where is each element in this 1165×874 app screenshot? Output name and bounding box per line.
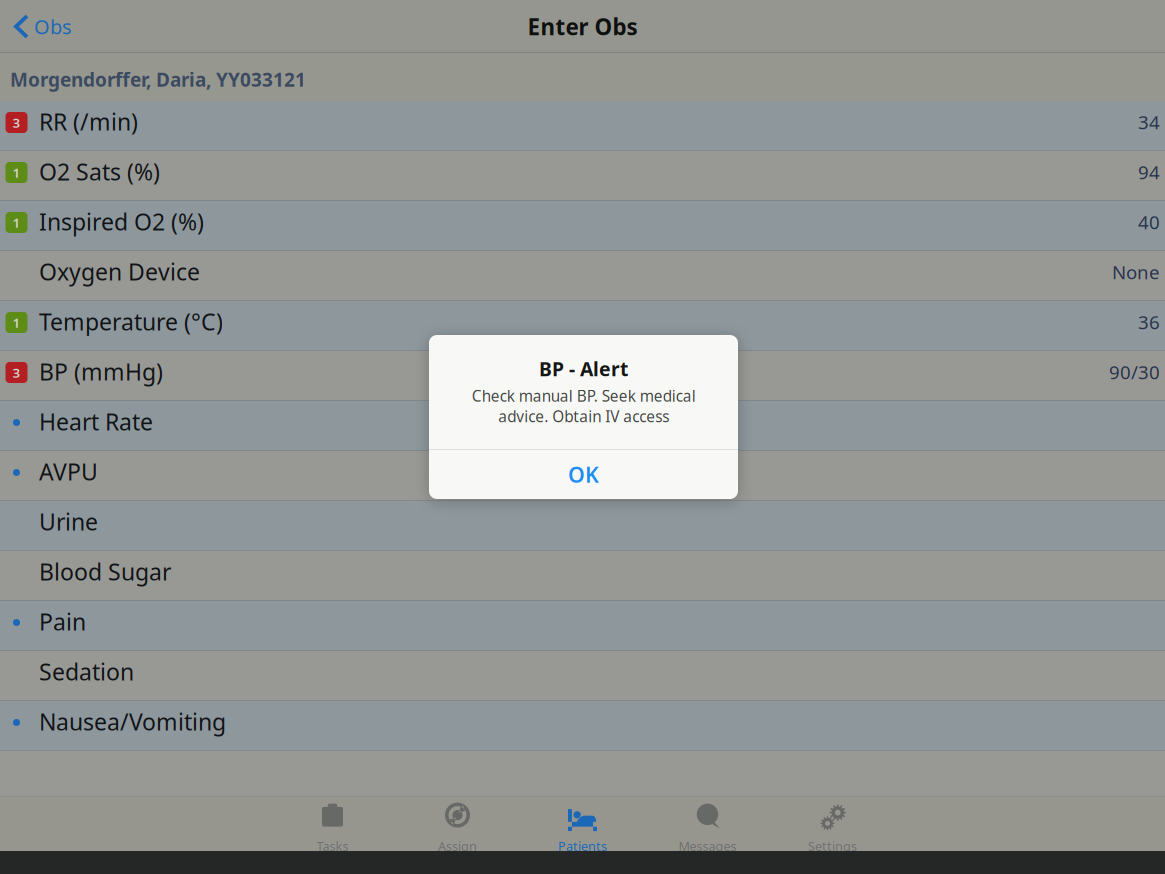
staticText: Temperature (°C) bbox=[39, 306, 223, 337]
staticText: Patients bbox=[558, 838, 607, 854]
staticText: AVPU bbox=[39, 456, 98, 487]
staticText: 1 bbox=[12, 164, 20, 181]
staticText: 94 bbox=[1138, 160, 1160, 184]
staticText: None bbox=[1112, 260, 1160, 284]
staticText: Obs bbox=[34, 13, 72, 40]
staticText: RR (/min) bbox=[39, 106, 138, 137]
staticText: Morgendorffer, Daria, YY033121 bbox=[10, 67, 306, 92]
button[interactable]: Urine bbox=[0, 501, 1165, 551]
button[interactable]: Oxygen Device bbox=[0, 251, 1165, 301]
staticText: 1 bbox=[12, 214, 20, 231]
staticText: 36 bbox=[1138, 310, 1160, 334]
button[interactable]: Nausea/Vomiting bbox=[0, 701, 1165, 751]
staticText: BP (mmHg) bbox=[39, 356, 163, 387]
staticText: 34 bbox=[1138, 110, 1160, 134]
button[interactable]: Settings bbox=[770, 796, 895, 851]
staticText: 40 bbox=[1138, 210, 1160, 234]
button[interactable]: OK bbox=[429, 450, 738, 499]
button[interactable]: Blood Sugar bbox=[0, 551, 1165, 601]
button[interactable]: Pain bbox=[0, 601, 1165, 651]
staticText: Messages bbox=[678, 838, 736, 854]
button[interactable]: 3 bbox=[0, 351, 1165, 401]
staticText: Blood Sugar bbox=[39, 556, 171, 587]
staticText: Pain bbox=[39, 606, 86, 637]
button[interactable]: AVPU bbox=[0, 451, 1165, 501]
button[interactable]: Heart Rate bbox=[0, 401, 1165, 451]
button[interactable]: 3 bbox=[0, 101, 1165, 151]
staticText: Heart Rate bbox=[39, 406, 153, 437]
button[interactable]: Tasks bbox=[270, 796, 395, 851]
button[interactable]: Patients bbox=[520, 796, 645, 851]
staticText: Sedation bbox=[39, 656, 134, 687]
button[interactable]: 1 bbox=[0, 151, 1165, 201]
staticText: Oxygen Device bbox=[39, 256, 200, 287]
button[interactable]: 1 bbox=[0, 301, 1165, 351]
staticText: Settings bbox=[808, 838, 857, 854]
button[interactable]: Messages bbox=[645, 796, 770, 851]
staticText: Tasks bbox=[316, 838, 348, 854]
staticText: Inspired O2 (%) bbox=[39, 206, 204, 237]
button[interactable]: Sedation bbox=[0, 651, 1165, 701]
staticText: 3 bbox=[12, 114, 20, 131]
staticText: Assign bbox=[438, 838, 477, 854]
button[interactable]: Obs bbox=[0, 0, 84, 52]
button[interactable]: Assign bbox=[395, 796, 520, 851]
staticText: BP - Alert bbox=[539, 356, 628, 382]
staticText: 90/30 bbox=[1109, 360, 1160, 384]
button[interactable]: 1 bbox=[0, 201, 1165, 251]
staticText: Check manual BP. Seek medical advice. Ob… bbox=[471, 386, 695, 426]
staticText: 3 bbox=[12, 364, 20, 381]
staticText: 1 bbox=[12, 314, 20, 331]
staticText: Urine bbox=[39, 506, 98, 537]
staticText: OK bbox=[568, 460, 599, 489]
staticText: Nausea/Vomiting bbox=[39, 706, 226, 737]
staticText: O2 Sats (%) bbox=[39, 156, 160, 187]
staticText: Enter Obs bbox=[527, 12, 637, 41]
